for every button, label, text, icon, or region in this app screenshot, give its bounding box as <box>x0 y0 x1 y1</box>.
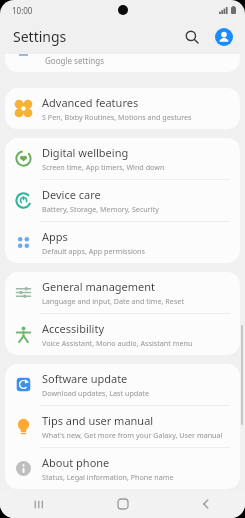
staticText: Battery, Storage, Memory, Security <box>42 204 159 214</box>
staticText: Voice Assistant, Mono audio, Assistant m… <box>42 338 193 348</box>
staticText: Screen time, App timers, Wind down <box>42 162 165 172</box>
button[interactable]: Home <box>110 491 136 517</box>
staticText: About phone <box>42 455 110 470</box>
staticText: Accessibility <box>42 321 105 336</box>
staticText: Device care <box>42 187 101 202</box>
button[interactable]: Recent apps <box>26 491 52 517</box>
button[interactable]: Google settings <box>5 54 240 72</box>
button[interactable]: About phone <box>5 448 240 489</box>
staticText: Apps <box>42 229 68 244</box>
staticText: Download updates, Last update <box>42 388 149 398</box>
staticText: Digital wellbeing <box>42 145 129 160</box>
button[interactable]: Digital wellbeing <box>5 138 240 179</box>
staticText: Default apps, App permissions <box>42 246 145 256</box>
button[interactable]: Back <box>193 491 219 517</box>
button[interactable]: Tips and user manual <box>5 406 240 447</box>
staticText: 10:00 <box>12 5 33 16</box>
staticText: Settings <box>13 27 67 46</box>
button[interactable]: Advanced features <box>5 88 240 129</box>
staticText: Tips and user manual <box>42 413 154 428</box>
button[interactable]: General management <box>5 272 240 313</box>
staticText: Software update <box>42 371 128 386</box>
staticText: Language and input, Date and time, Reset <box>42 296 184 306</box>
staticText: General management <box>42 279 156 294</box>
button[interactable]: Search <box>181 26 203 48</box>
button[interactable]: Software update <box>5 364 240 405</box>
staticText: What's new, Get more from your Galaxy, U… <box>42 430 223 440</box>
staticText: Advanced features <box>42 95 139 110</box>
staticText: Google settings <box>45 55 104 66</box>
staticText: S Pen, Bixby Routines, Motions and gestu… <box>42 112 192 122</box>
button[interactable]: Apps <box>5 222 240 263</box>
button[interactable]: Device care <box>5 180 240 221</box>
staticText: Status, Legal information, Phone name <box>42 472 174 482</box>
button[interactable]: Accessibility <box>5 314 240 355</box>
button[interactable]: Account <box>213 26 235 48</box>
